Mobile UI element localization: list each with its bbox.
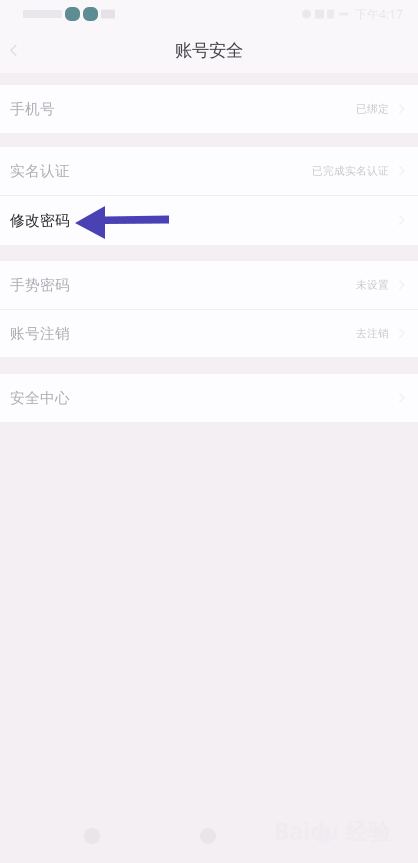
staticText: 安全中心 [10,389,70,407]
staticText: 修改密码 [10,211,70,229]
staticText: 已完成实名认证 [312,164,389,177]
staticText: 账号安全 [175,40,243,61]
staticText: 手势密码 [10,276,70,294]
staticText: 已绑定 [356,102,389,115]
button[interactable]: 手势密码 [0,261,418,309]
staticText: 实名认证 [10,162,70,180]
button[interactable]: 账号注销 [0,310,418,357]
staticText: 下午4:17 [355,6,403,22]
staticText: 去注销 [356,327,389,340]
button[interactable]: 实名认证 [0,147,418,195]
button[interactable]: 安全中心 [0,374,418,422]
staticText: 未设置 [356,278,389,291]
staticText: 账号注销 [10,324,70,342]
button[interactable]: 手机号 [0,85,418,133]
button[interactable]: 修改密码 [0,196,418,245]
staticText: 手机号 [10,100,55,118]
